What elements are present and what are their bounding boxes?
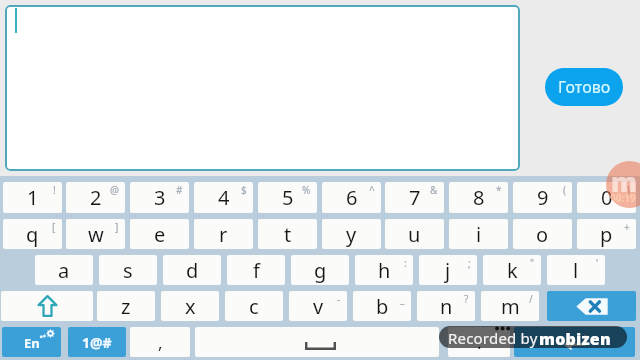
staticText: g bbox=[314, 257, 327, 284]
staticText: ' bbox=[596, 256, 599, 270]
button[interactable]: a bbox=[35, 255, 93, 285]
button[interactable]: q bbox=[3, 219, 62, 249]
staticText: i bbox=[476, 221, 482, 248]
staticText: _ bbox=[400, 292, 405, 306]
button[interactable]: Enter bbox=[514, 327, 635, 357]
staticText: t bbox=[284, 221, 292, 248]
staticText: @ bbox=[110, 183, 119, 197]
staticText: z bbox=[121, 293, 131, 320]
staticText: . bbox=[477, 331, 482, 354]
button[interactable]: 8 bbox=[449, 182, 508, 213]
button[interactable]: , bbox=[130, 327, 190, 357]
staticText: + bbox=[624, 220, 630, 234]
staticText: o bbox=[536, 221, 549, 248]
button[interactable]: 1@# bbox=[68, 327, 126, 357]
button[interactable]: 2 bbox=[66, 182, 125, 213]
button[interactable]: z bbox=[97, 291, 155, 321]
button[interactable]: v bbox=[289, 291, 347, 321]
staticText: [ bbox=[52, 220, 56, 234]
button[interactable]: t bbox=[258, 219, 317, 249]
staticText: 4 bbox=[218, 184, 230, 211]
button[interactable]: x bbox=[161, 291, 219, 321]
staticText: n bbox=[440, 293, 453, 320]
button[interactable]: h bbox=[355, 255, 413, 285]
button[interactable]: r bbox=[194, 219, 253, 249]
staticText: 6 bbox=[346, 184, 358, 211]
button[interactable]: y bbox=[322, 219, 381, 249]
staticText: $ bbox=[241, 183, 247, 197]
button[interactable]: n bbox=[417, 291, 475, 321]
staticText: h bbox=[378, 257, 391, 284]
button[interactable]: Change language bbox=[2, 327, 61, 357]
button[interactable]: 3 bbox=[130, 182, 189, 213]
staticText: f bbox=[253, 257, 260, 284]
staticText: e bbox=[154, 221, 166, 248]
button[interactable]: Shift bbox=[1, 291, 93, 321]
staticText: mobizen bbox=[539, 328, 611, 348]
button[interactable]: 1 bbox=[3, 182, 62, 213]
staticText: ? bbox=[464, 292, 469, 306]
staticText: b bbox=[376, 293, 389, 320]
button[interactable]: 0 bbox=[577, 182, 636, 213]
button[interactable]: g bbox=[291, 255, 349, 285]
staticText: m bbox=[501, 293, 520, 320]
button[interactable]: Backspace bbox=[547, 291, 636, 321]
button[interactable]: Готово bbox=[545, 68, 623, 106]
button[interactable]: p bbox=[577, 219, 636, 249]
staticText: # bbox=[176, 183, 183, 197]
button[interactable]: l bbox=[547, 255, 605, 285]
staticText: 1@# bbox=[82, 333, 112, 352]
button[interactable]: Space bbox=[195, 327, 439, 357]
staticText: 3 bbox=[154, 184, 166, 211]
button[interactable]: f bbox=[227, 255, 285, 285]
staticText: ^ bbox=[369, 183, 375, 197]
staticText: d bbox=[186, 257, 199, 284]
staticText: k bbox=[507, 257, 518, 284]
staticText: 00:19 bbox=[610, 191, 636, 205]
staticText: v bbox=[313, 293, 324, 320]
staticText: ( bbox=[563, 183, 566, 197]
staticText: ; bbox=[468, 256, 471, 270]
staticText: Recorded by bbox=[448, 328, 538, 348]
staticText: x bbox=[185, 293, 196, 320]
button[interactable]: 4 bbox=[194, 182, 253, 213]
staticText: 1 bbox=[27, 184, 39, 211]
button[interactable]: k bbox=[483, 255, 541, 285]
staticText: a bbox=[58, 257, 70, 284]
staticText: 0 bbox=[601, 184, 613, 211]
button[interactable]: o bbox=[513, 219, 572, 249]
staticText: / bbox=[529, 292, 533, 306]
button[interactable]: d bbox=[163, 255, 221, 285]
staticText: & bbox=[430, 183, 438, 197]
staticText: En bbox=[24, 334, 40, 352]
button[interactable]: 6 bbox=[322, 182, 381, 213]
button[interactable]: m bbox=[481, 291, 539, 321]
button[interactable] bbox=[5, 5, 520, 171]
staticText: , bbox=[158, 331, 163, 354]
button[interactable]: c bbox=[225, 291, 283, 321]
button[interactable]: u bbox=[385, 219, 444, 249]
button[interactable]: i bbox=[449, 219, 508, 249]
button[interactable]: Recording indicator bbox=[606, 161, 640, 208]
staticText: - bbox=[337, 292, 341, 306]
button[interactable]: e bbox=[130, 219, 189, 249]
staticText: 5 bbox=[282, 184, 294, 211]
staticText: Готово bbox=[558, 76, 611, 98]
staticText: ] bbox=[115, 220, 119, 234]
button[interactable]: b bbox=[353, 291, 411, 321]
button[interactable]: 7 bbox=[385, 182, 444, 213]
button[interactable]: 9 bbox=[513, 182, 572, 213]
staticText: m bbox=[611, 164, 638, 199]
staticText: u bbox=[408, 221, 421, 248]
staticText: r bbox=[219, 221, 228, 248]
staticText: : bbox=[404, 256, 407, 270]
button[interactable]: s bbox=[99, 255, 157, 285]
staticText: ! bbox=[53, 183, 56, 197]
staticText: l bbox=[573, 257, 579, 284]
staticText: % bbox=[302, 183, 311, 197]
button[interactable]: j bbox=[419, 255, 477, 285]
button[interactable]: . bbox=[448, 327, 510, 357]
button[interactable]: w bbox=[66, 219, 125, 249]
staticText: y bbox=[346, 221, 357, 248]
button[interactable]: 5 bbox=[258, 182, 317, 213]
